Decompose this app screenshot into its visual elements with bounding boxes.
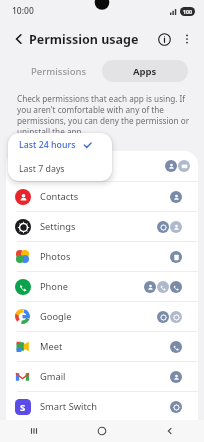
staticText: Photos: [40, 250, 170, 263]
staticText: Check permissions that each app is using…: [17, 93, 192, 137]
staticText: Gmail: [40, 370, 170, 383]
staticText: Meet: [40, 340, 170, 353]
button[interactable]: Last 24 hours: [8, 133, 112, 157]
staticText: Settings: [40, 220, 157, 233]
staticText: 100: [183, 8, 192, 15]
button[interactable]: Recents: [0, 420, 68, 442]
button[interactable]: Information: [152, 27, 176, 51]
staticText: Permissions: [31, 65, 87, 78]
button[interactable]: Photos: [6, 241, 198, 271]
button[interactable]: Permissions: [17, 60, 101, 82]
staticText: 10:00: [12, 5, 34, 17]
button[interactable]: Gmail: [6, 361, 198, 391]
staticText: Phone: [40, 280, 144, 293]
staticText: Permission usage: [29, 31, 139, 48]
button[interactable]: Back: [6, 26, 32, 52]
staticText: Smart Switch: [40, 400, 170, 413]
button[interactable]: Google: [6, 301, 198, 331]
staticText: Google: [40, 310, 157, 323]
button[interactable]: Meet: [6, 331, 198, 361]
staticText: Last 7 days: [19, 163, 65, 175]
button[interactable]: Home: [68, 420, 136, 442]
staticText: S: [20, 401, 26, 414]
button[interactable]: Phone: [6, 271, 198, 301]
button[interactable]: Back: [136, 420, 204, 442]
button[interactable]: Contacts: [6, 181, 198, 211]
button[interactable]: S: [6, 391, 198, 421]
button[interactable]: More options: [176, 28, 198, 50]
button[interactable]: Apps: [102, 60, 188, 82]
button[interactable]: Settings: [6, 211, 198, 241]
staticText: Last 24 hours: [19, 139, 76, 151]
staticText: Contacts: [40, 190, 170, 203]
button[interactable]: Last 7 days: [8, 157, 112, 181]
staticText: Apps: [133, 65, 157, 78]
